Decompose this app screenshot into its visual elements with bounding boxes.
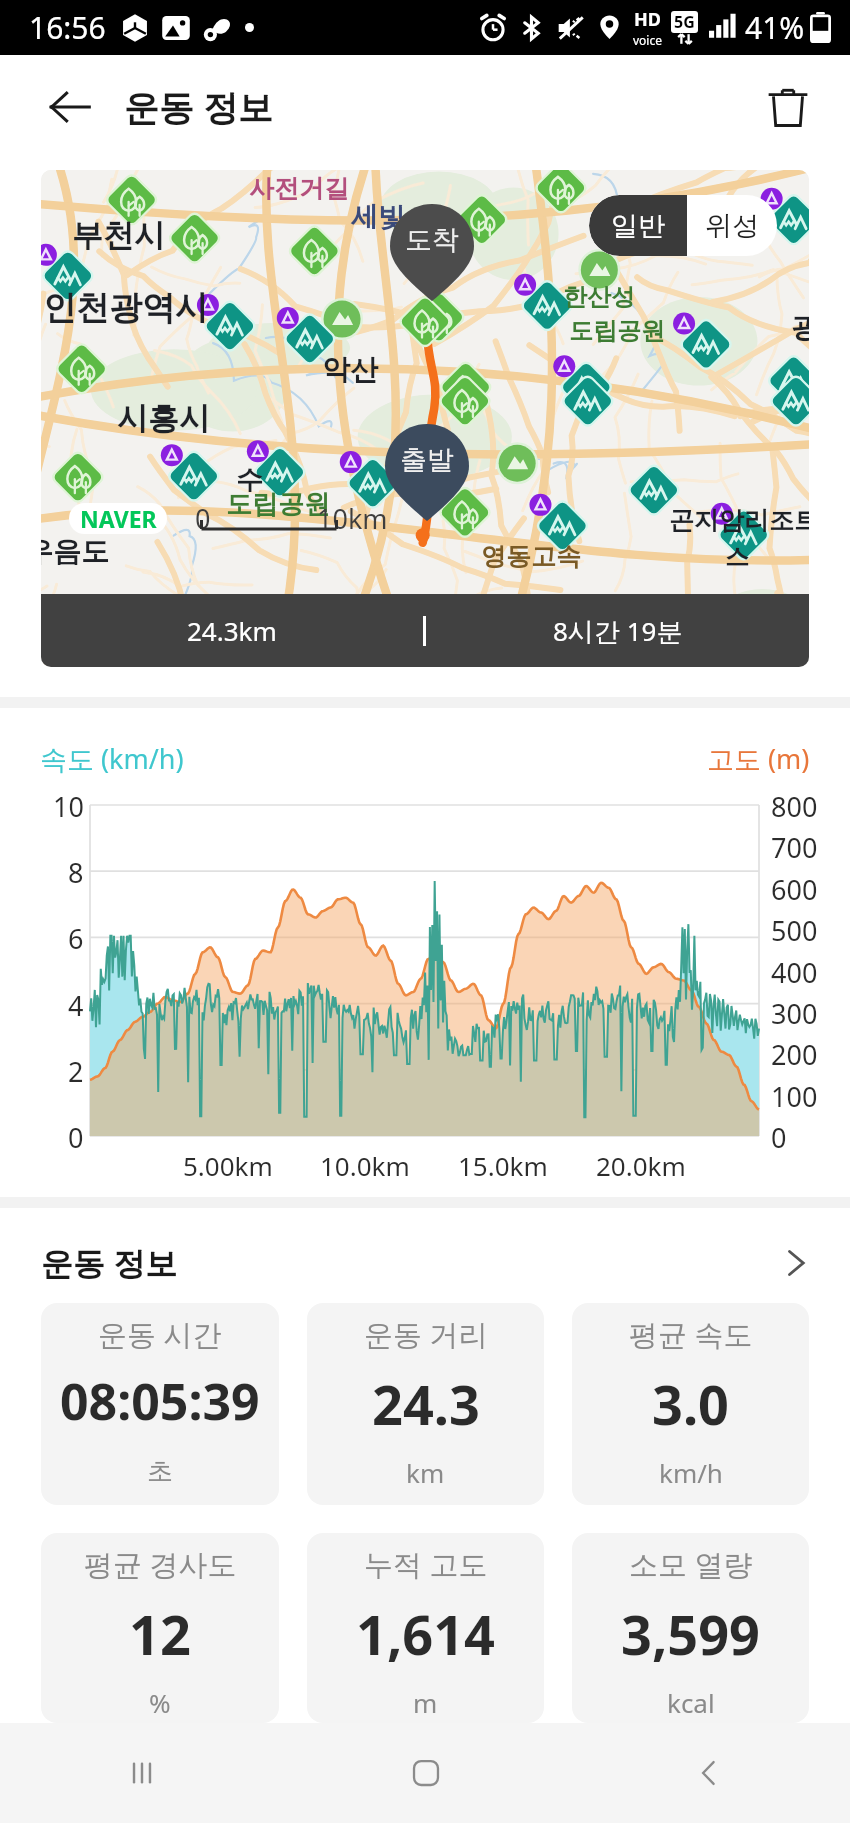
staticText: 0: [195, 500, 211, 537]
staticText: 24.3km: [187, 613, 277, 648]
staticText: 사전거길: [249, 173, 349, 204]
button[interactable]: 평균 경사도: [41, 1533, 279, 1723]
staticText: 0: [771, 1119, 787, 1156]
staticText: 고도 (m): [707, 740, 810, 777]
button[interactable]: Back: [567, 1723, 850, 1823]
staticText: 10: [53, 788, 84, 825]
staticText: 출발: [400, 443, 454, 477]
staticText: 소모 열량: [629, 1544, 753, 1584]
staticText: 300: [771, 995, 818, 1032]
staticText: 도립공원: [226, 488, 330, 521]
staticText: 8: [68, 854, 84, 891]
staticText: 4: [68, 987, 84, 1024]
staticText: km: [406, 1455, 445, 1490]
staticText: 5G: [674, 11, 695, 33]
staticText: 시흥시: [117, 399, 210, 438]
staticText: 우음도: [41, 534, 109, 569]
staticText: 위성: [705, 209, 759, 243]
staticText: 10km: [317, 500, 388, 537]
staticText: km/h: [659, 1455, 723, 1490]
button[interactable]: 평균 속도: [572, 1303, 809, 1505]
staticText: 도립공원: [569, 316, 665, 346]
staticText: 100: [771, 1078, 818, 1115]
staticText: 0: [68, 1119, 84, 1156]
staticText: 24.3: [372, 1367, 480, 1441]
staticText: 수: [236, 463, 263, 497]
staticText: 운동 정보: [124, 83, 274, 131]
staticText: 2: [68, 1053, 84, 1090]
staticText: 400: [771, 954, 818, 991]
staticText: 부천시: [72, 216, 165, 255]
staticText: 8시간 19분: [553, 613, 683, 649]
staticText: 스: [725, 542, 749, 572]
staticText: 3,599: [621, 1597, 760, 1671]
staticText: 운동 시간: [98, 1314, 222, 1354]
staticText: 200: [771, 1036, 818, 1073]
button[interactable]: Back: [26, 63, 114, 151]
staticText: 10.0km: [320, 1148, 410, 1183]
button[interactable]: 위성: [687, 195, 777, 256]
staticText: 도착: [405, 223, 459, 257]
staticText: 16:56: [29, 7, 106, 48]
staticText: %: [149, 1685, 171, 1720]
button[interactable]: 누적 고도: [307, 1533, 544, 1723]
staticText: 초: [147, 1455, 173, 1488]
staticText: 평균 경사도: [84, 1544, 237, 1584]
staticText: 700: [771, 829, 818, 866]
button[interactable]: 운동 정보: [0, 1208, 850, 1303]
button[interactable]: 부천시: [41, 170, 809, 667]
button[interactable]: 일반: [589, 195, 687, 256]
staticText: 광: [791, 310, 809, 345]
staticText: 20.0km: [596, 1148, 686, 1183]
staticText: kcal: [667, 1685, 715, 1720]
staticText: NAVER: [80, 503, 157, 534]
staticText: 평균 속도: [629, 1314, 753, 1354]
staticText: 15.0km: [458, 1148, 548, 1183]
staticText: 누적 고도: [364, 1544, 488, 1584]
staticText: HD: [634, 7, 661, 32]
button[interactable]: 소모 열량: [572, 1533, 809, 1723]
staticText: 악산: [322, 352, 378, 387]
staticText: 운동 정보: [41, 1241, 178, 1285]
staticText: 인천광역시: [43, 287, 208, 329]
staticText: 일반: [611, 209, 665, 243]
staticText: 1,614: [356, 1597, 495, 1671]
staticText: 세빛: [351, 200, 405, 234]
staticText: 500: [771, 912, 818, 949]
button[interactable]: Recent apps: [0, 1723, 284, 1823]
staticText: 6: [68, 920, 84, 957]
button[interactable]: 운동 거리: [307, 1303, 544, 1505]
staticText: 08:05:39: [60, 1367, 260, 1435]
staticText: 3.0: [652, 1367, 729, 1441]
staticText: m: [413, 1685, 438, 1720]
staticText: 한산성: [563, 282, 635, 312]
staticText: voice: [633, 32, 662, 48]
staticText: 600: [771, 871, 818, 908]
staticText: 41%: [745, 7, 805, 48]
button[interactable]: Delete: [744, 63, 832, 151]
staticText: 곤지암리조트: [669, 505, 809, 536]
staticText: 800: [771, 788, 818, 825]
staticText: 운동 거리: [364, 1314, 488, 1354]
staticText: 5.00km: [183, 1148, 273, 1183]
button[interactable]: Home: [284, 1723, 567, 1823]
staticText: 영동고속: [481, 541, 581, 572]
staticText: 속도 (km/h): [40, 740, 184, 777]
button[interactable]: 운동 시간: [41, 1303, 279, 1505]
staticText: 12: [129, 1597, 191, 1671]
